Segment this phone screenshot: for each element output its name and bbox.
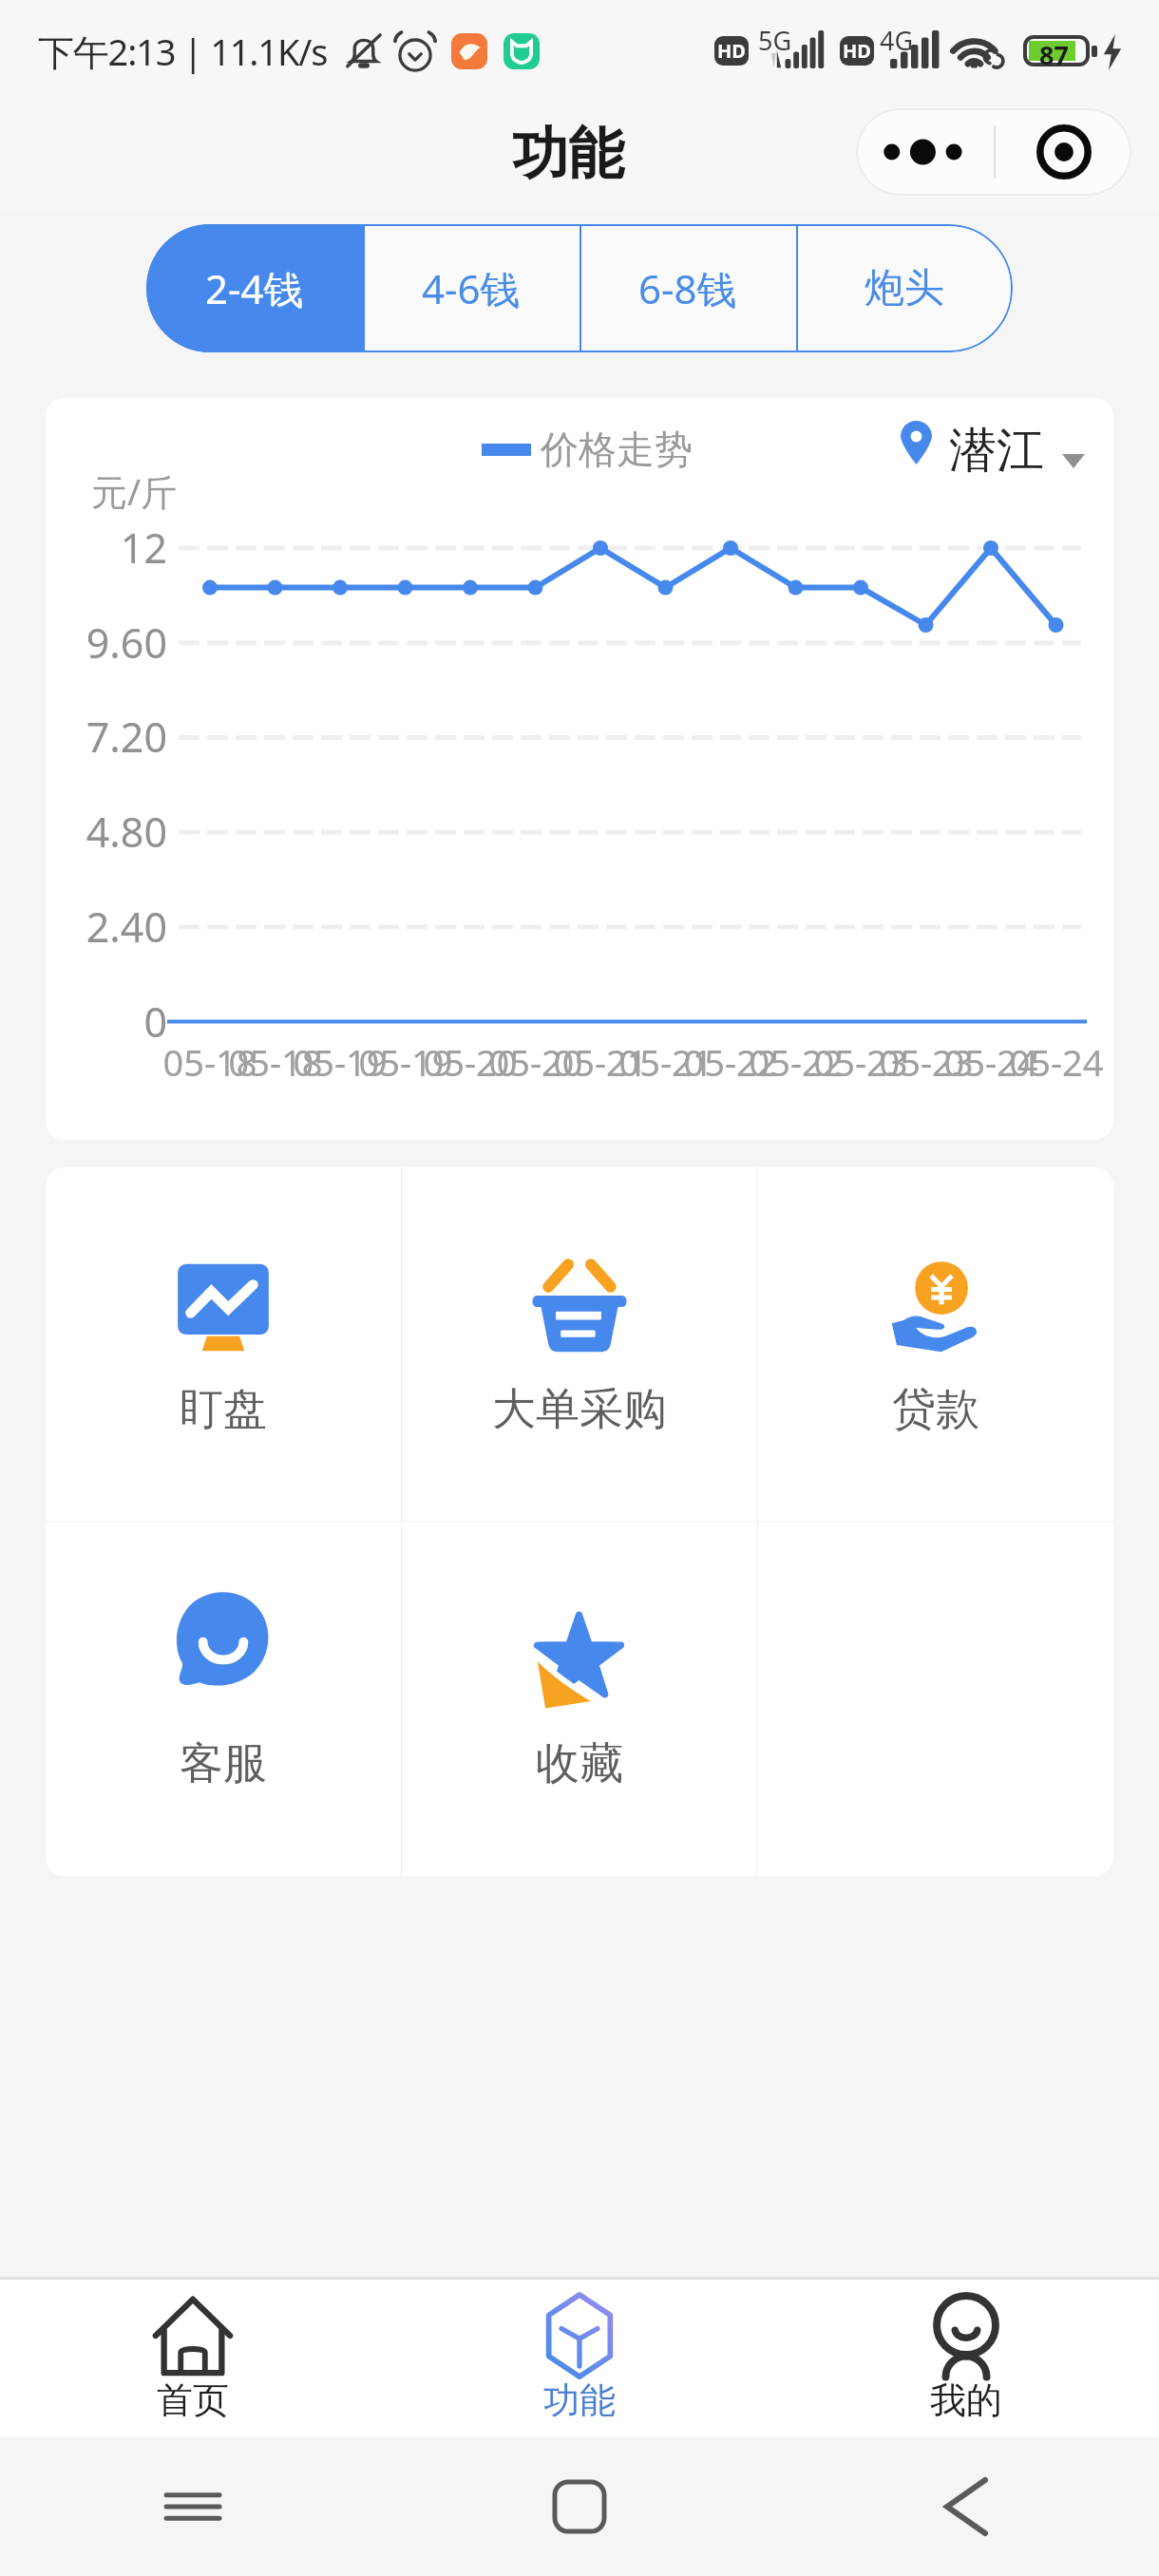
button[interactable]: Close <box>996 108 1131 196</box>
staticText: 05-19 <box>339 1037 472 1087</box>
button[interactable]: Back <box>772 2436 1159 2576</box>
staticText: 盯盘 <box>180 1382 267 1437</box>
staticText: 功能 <box>512 119 624 189</box>
button[interactable]: Home <box>386 2436 772 2576</box>
staticText: 05-18 <box>143 1037 276 1087</box>
staticText: 4.80 <box>46 804 167 860</box>
button[interactable]: 2-4钱 <box>146 224 363 352</box>
staticText: 贷款 <box>892 1382 979 1437</box>
staticText: 我的 <box>930 2377 1002 2423</box>
staticText: 9.60 <box>46 615 167 671</box>
staticText: 12 <box>46 520 167 576</box>
button[interactable]: 潜江 <box>855 417 1089 489</box>
staticText: 收藏 <box>536 1736 623 1791</box>
button[interactable]: 我的 <box>772 2280 1159 2436</box>
staticText: 05-24 <box>990 1037 1113 1087</box>
staticText: 大单采购 <box>492 1382 667 1437</box>
staticText: 05-20 <box>404 1037 537 1087</box>
button[interactable]: 大单采购 <box>402 1167 757 1521</box>
button[interactable]: 4-6钱 <box>363 224 579 352</box>
staticText: 05-22 <box>730 1037 863 1087</box>
staticText: HD <box>717 38 746 64</box>
staticText: 7.20 <box>46 709 167 765</box>
staticText: 05-22 <box>664 1037 797 1087</box>
staticText: 价格走势 <box>541 426 693 473</box>
staticText: 4-6钱 <box>422 261 521 315</box>
button[interactable]: 首页 <box>0 2280 386 2436</box>
button[interactable]: More <box>856 108 994 196</box>
staticText: 05-23 <box>794 1037 927 1087</box>
staticText: 5G <box>758 23 792 58</box>
staticText: 05-18 <box>209 1037 342 1087</box>
staticText: 2-4钱 <box>205 261 304 315</box>
staticText: 05-23 <box>860 1037 993 1087</box>
button[interactable]: 6-8钱 <box>579 224 796 352</box>
button[interactable]: 炮头 <box>796 224 1013 352</box>
staticText: 下午2:13 | 11.1K/s <box>38 27 328 76</box>
staticText: 05-21 <box>534 1037 667 1087</box>
staticText: 0 <box>46 994 167 1050</box>
staticText: 05-21 <box>599 1037 732 1087</box>
staticText: 6-8钱 <box>638 261 737 315</box>
staticText: 功能 <box>543 2377 616 2423</box>
staticText: 05-24 <box>924 1037 1057 1087</box>
staticText: 87 <box>1039 37 1069 72</box>
staticText: HD <box>843 38 871 64</box>
staticText: 首页 <box>157 2377 229 2423</box>
staticText: 2.40 <box>46 899 167 955</box>
button[interactable]: 收藏 <box>402 1522 757 1876</box>
button[interactable]: 功能 <box>386 2280 772 2436</box>
staticText: 4G <box>880 23 914 58</box>
button[interactable]: 客服 <box>46 1522 401 1876</box>
staticText: 潜江 <box>949 421 1044 481</box>
staticText: 客服 <box>180 1736 267 1791</box>
staticText: 05-19 <box>274 1037 407 1087</box>
staticText: 炮头 <box>864 263 944 313</box>
button[interactable]: Recent apps <box>0 2436 386 2576</box>
staticText: 元/斤 <box>91 466 178 516</box>
staticText: 05-20 <box>469 1037 602 1087</box>
button[interactable]: 贷款 <box>758 1167 1113 1521</box>
button[interactable]: 盯盘 <box>46 1167 401 1521</box>
